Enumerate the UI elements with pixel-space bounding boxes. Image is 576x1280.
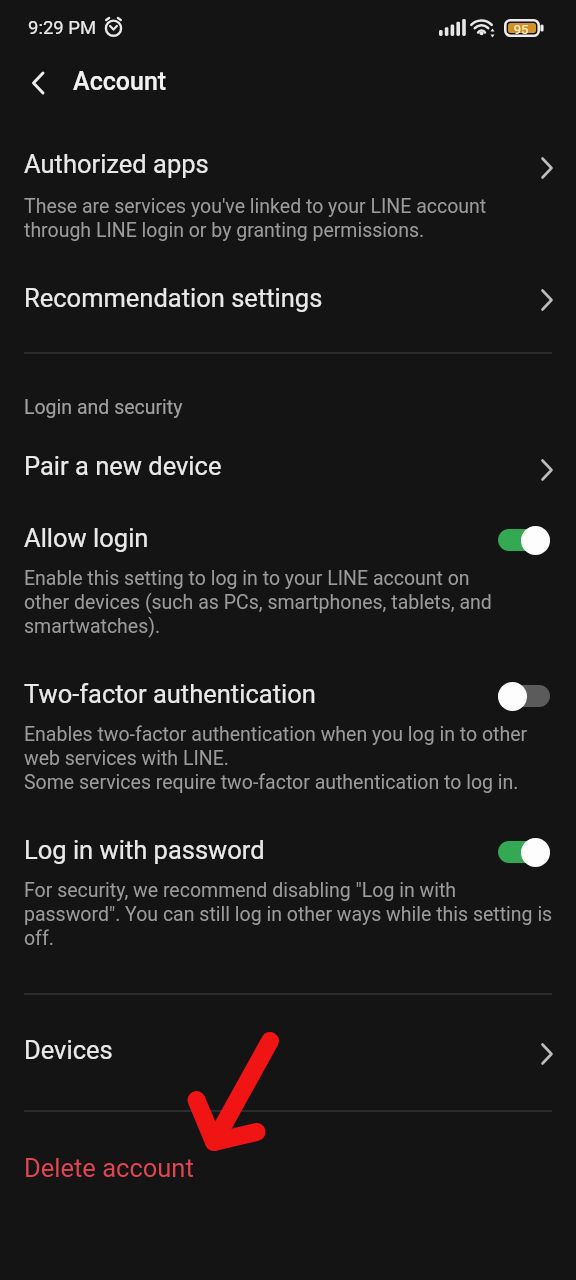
button[interactable]: Allow login (0, 512, 576, 654)
staticText: Log in with password (24, 835, 265, 865)
button[interactable]: Two-factor authentication (0, 668, 576, 810)
staticText: Recommendation settings (24, 283, 323, 313)
staticText: Authorized apps (24, 149, 209, 179)
staticText: Delete account (24, 1153, 194, 1183)
staticText: For security, we recommend disabling "Lo… (24, 879, 553, 950)
staticText: Account (73, 67, 167, 96)
button[interactable] (18, 62, 60, 104)
staticText: 95 (510, 22, 532, 37)
staticText: Enables two-factor authentication when y… (24, 723, 528, 794)
staticText: Enable this setting to log in to your LI… (24, 567, 492, 638)
staticText: Login and security (24, 396, 183, 419)
button[interactable]: Devices (0, 1026, 576, 1086)
staticText: Two-factor authentication (24, 679, 316, 709)
button[interactable]: Authorized apps (0, 140, 576, 256)
staticText: These are services you've linked to your… (24, 195, 487, 242)
staticText: Devices (24, 1035, 113, 1065)
button[interactable]: Recommendation settings (0, 266, 576, 346)
staticText: Pair a new device (24, 451, 222, 481)
button[interactable]: Delete account (0, 1140, 576, 1204)
staticText: Allow login (24, 523, 149, 553)
staticText: 9:29 PM (28, 17, 97, 39)
button[interactable]: Log in with password (0, 824, 576, 966)
button[interactable]: Pair a new device (0, 440, 576, 508)
